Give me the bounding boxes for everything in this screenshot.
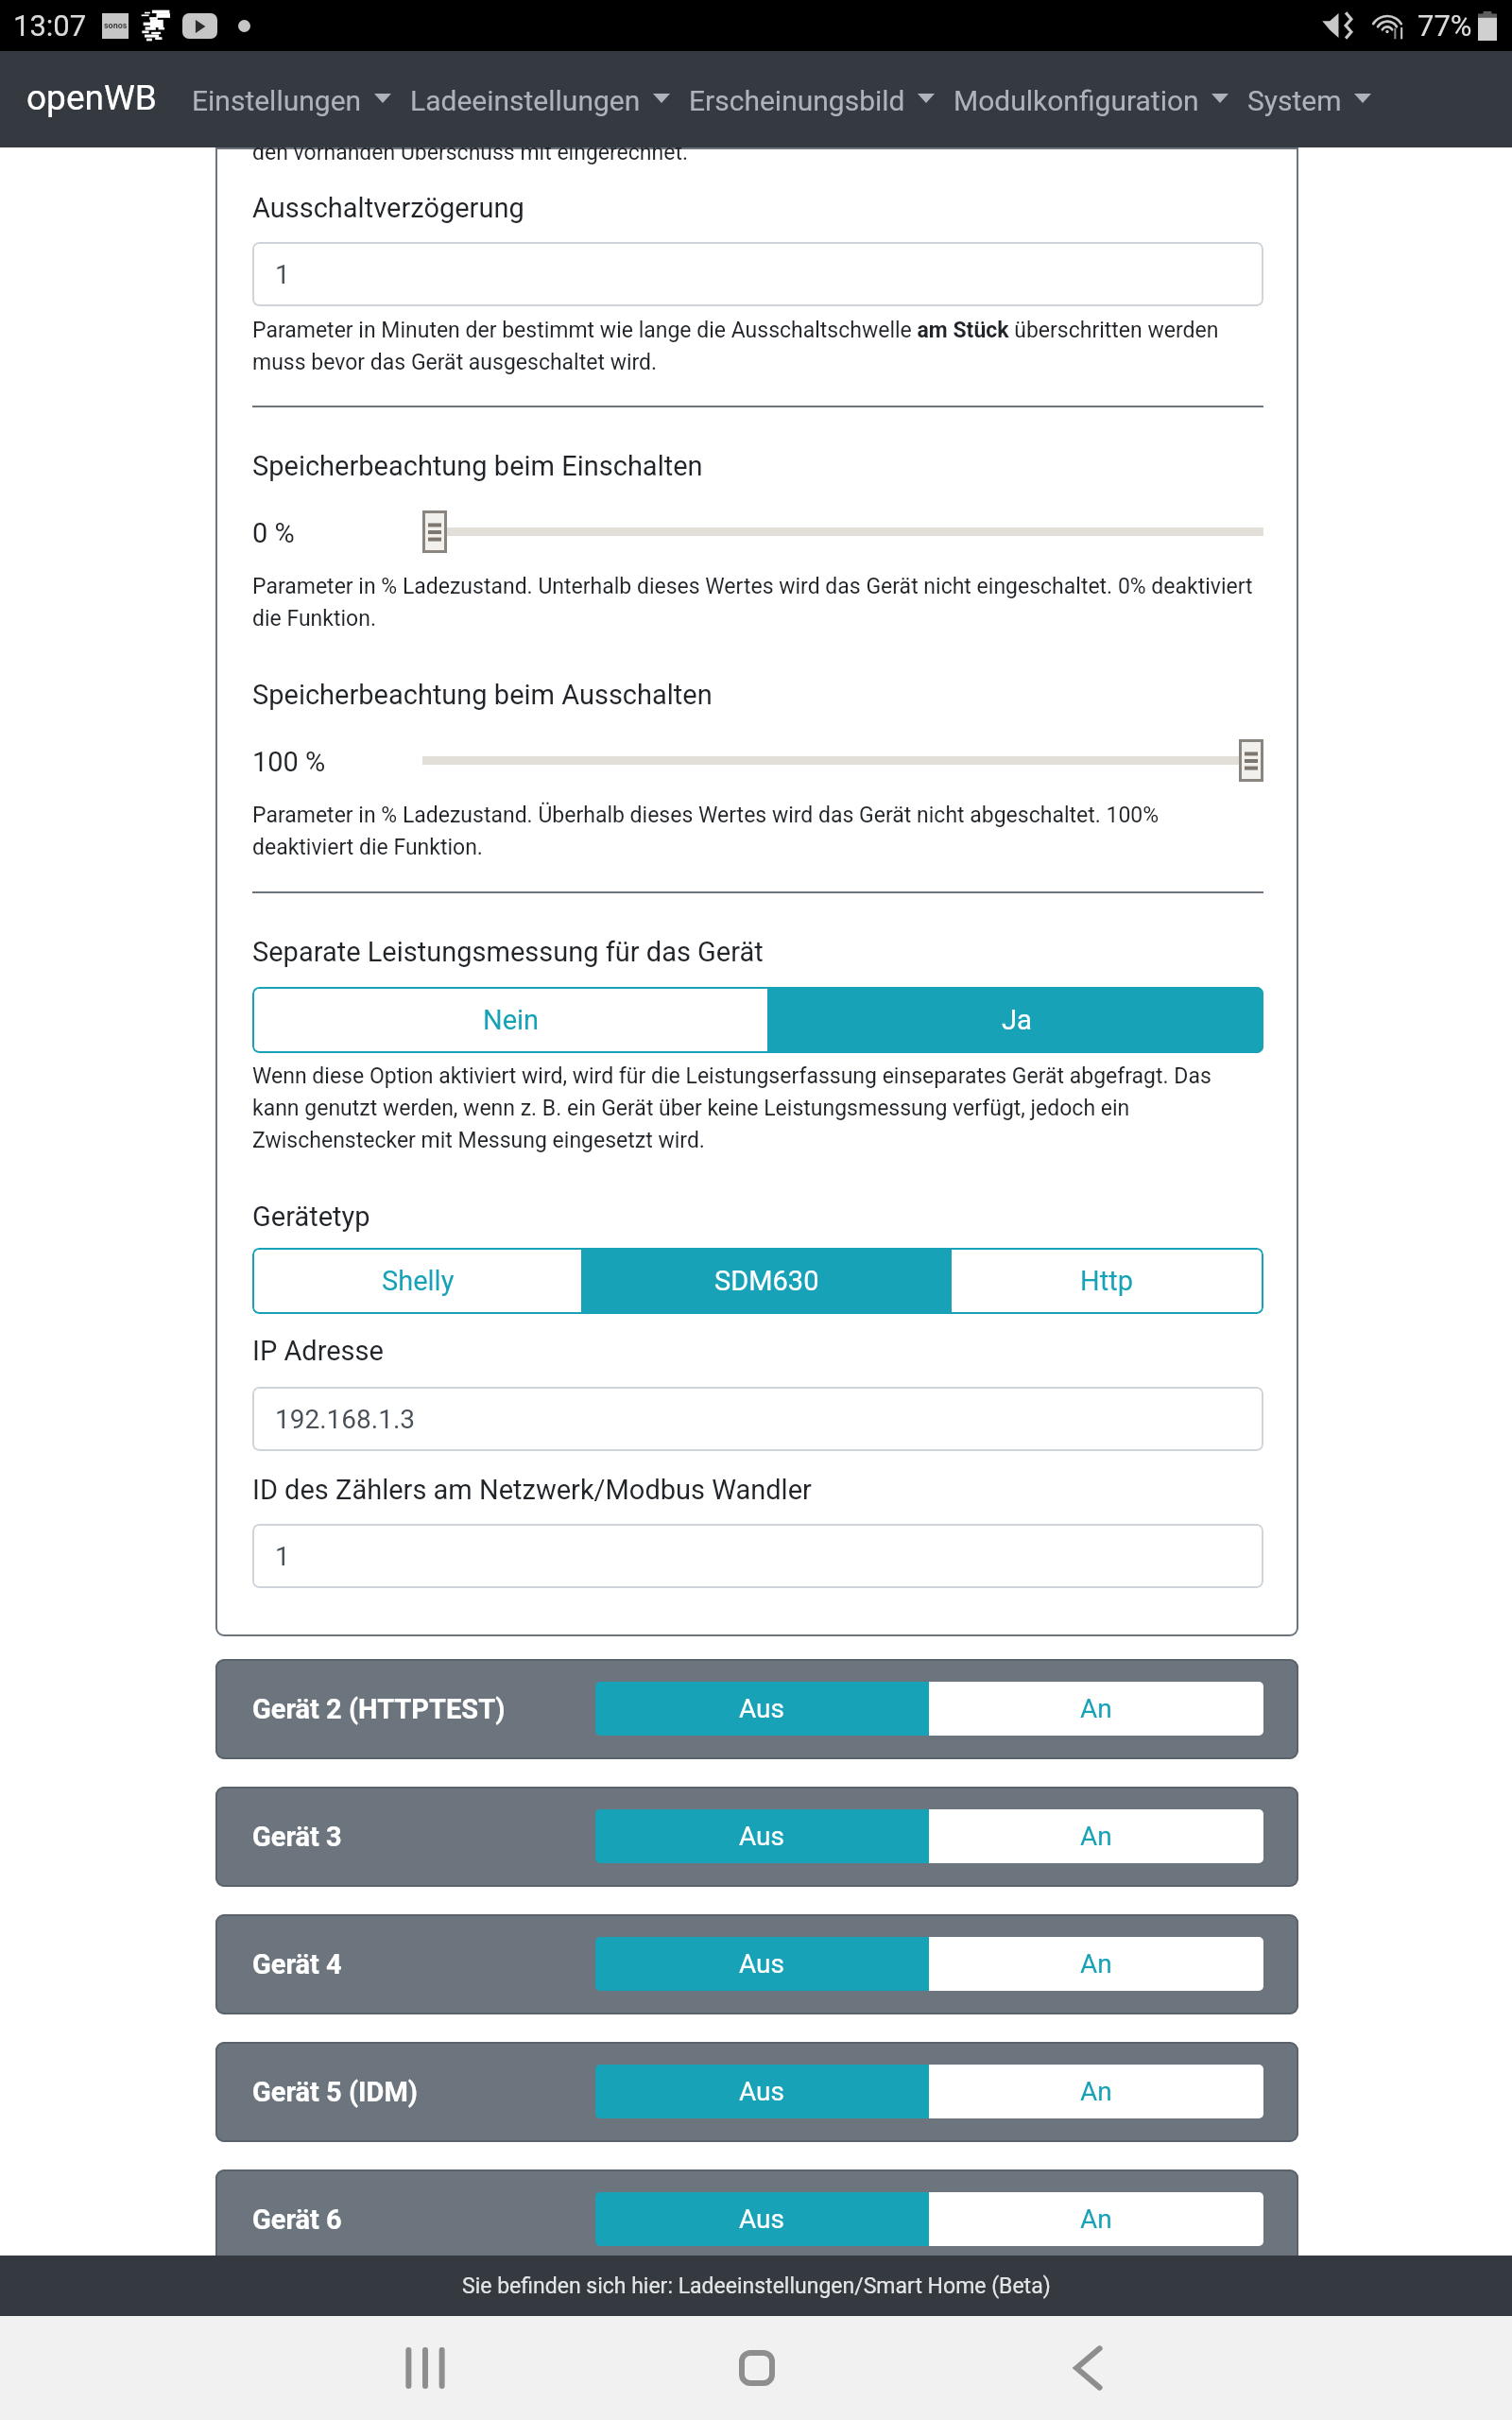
staticText: Aus [739, 1693, 785, 1724]
button[interactable]: Home [714, 2325, 799, 2411]
staticText: 1 [275, 1541, 290, 1572]
staticText: Gerät 5 (IDM) [252, 2076, 419, 2108]
staticText: IP Adresse [252, 1335, 384, 1367]
button[interactable]: Aus [595, 2065, 929, 2118]
staticText: Aus [739, 1948, 785, 1979]
staticText: Ja [1002, 1004, 1032, 1036]
button[interactable]: Aus [595, 1682, 929, 1736]
button[interactable]: Gerät 3 [215, 1787, 1298, 1887]
button[interactable]: Gerät 5 (IDM) [215, 2042, 1298, 2142]
staticText: Nein [483, 1004, 540, 1036]
button[interactable]: An [929, 1682, 1263, 1736]
staticText: An [1080, 1821, 1112, 1852]
staticText: Wenn diese Option aktiviert wird, wird f… [252, 1063, 1263, 1153]
staticText: Separate Leistungsmessung für das Gerät [252, 936, 764, 968]
staticText: Parameter in Minuten der bestimmt wie la… [252, 318, 1263, 375]
staticText: Erscheinungsbild [689, 84, 905, 117]
button[interactable]: Gerät 6 [215, 2169, 1298, 2270]
staticText: An [1080, 1948, 1112, 1979]
staticText: sonos [104, 21, 128, 31]
staticText: System [1247, 84, 1342, 117]
button[interactable]: Slider 0 % [425, 513, 444, 550]
staticText: SDM630 [714, 1265, 819, 1297]
staticText: Ausschaltverzögerung [252, 192, 524, 224]
button[interactable]: Ladeeinstellungen [401, 51, 679, 147]
button[interactable]: Http [950, 1248, 1263, 1314]
button[interactable]: Einstellungen [182, 51, 401, 147]
button[interactable]: An [929, 1937, 1263, 1991]
staticText: Parameter in % Ladezustand. Unterhalb di… [252, 574, 1263, 631]
staticText: Ladeeinstellungen [410, 84, 641, 117]
button[interactable]: System [1238, 51, 1381, 147]
staticText: 0 % [252, 517, 295, 549]
button[interactable]: Shelly [252, 1248, 583, 1314]
staticText: An [1080, 2076, 1112, 2107]
staticText: 77% [1417, 9, 1472, 43]
staticText: An [1080, 2204, 1112, 2235]
button[interactable]: Modulkonfiguration [944, 51, 1238, 147]
button[interactable]: 192.168.1.3 [252, 1387, 1263, 1451]
button[interactable]: 1 [252, 1524, 1263, 1588]
staticText: ID des Zählers am Netzwerk/Modbus Wandle… [252, 1474, 812, 1506]
button[interactable]: Erscheinungsbild [679, 51, 944, 147]
staticText: 13:07 [13, 9, 87, 43]
staticText: 100 % [252, 746, 326, 778]
staticText: Sie befinden sich hier: Ladeeinstellunge… [462, 2273, 1051, 2299]
staticText: Gerät 6 [252, 2204, 342, 2236]
button[interactable]: Nein [252, 987, 769, 1053]
staticText: Speicherbeachtung beim Einschalten [252, 450, 703, 482]
staticText: Aus [739, 2204, 785, 2235]
staticText: Einstellungen [192, 84, 362, 117]
staticText: Aus [739, 2076, 785, 2107]
staticText: An [1080, 1693, 1112, 1724]
staticText: Parameter in % Ladezustand. Überhalb die… [252, 803, 1263, 860]
button[interactable]: An [929, 2192, 1263, 2246]
staticText: Http [1080, 1265, 1133, 1297]
button[interactable]: Aus [595, 1937, 929, 1991]
staticText: den vorhanden Überschuss mit eingerechne… [252, 140, 688, 165]
button[interactable]: openWB [0, 51, 164, 147]
button[interactable]: Aus [595, 1809, 929, 1863]
button[interactable]: Gerät 4 [215, 1914, 1298, 2014]
staticText: Gerätetyp [252, 1201, 370, 1233]
button[interactable]: Recent apps [383, 2325, 468, 2411]
staticText: Shelly [382, 1265, 455, 1297]
button[interactable]: 1 [252, 242, 1263, 306]
staticText: Aus [739, 1821, 785, 1852]
staticText: Gerät 4 [252, 1948, 342, 1980]
button[interactable]: Gerät 2 (HTTPTEST) [215, 1659, 1298, 1759]
staticText: Speicherbeachtung beim Ausschalten [252, 679, 713, 711]
staticText: openWB [26, 78, 157, 118]
staticText: 1 [275, 259, 290, 290]
button[interactable]: Ja [769, 987, 1263, 1053]
button[interactable]: Aus [595, 2192, 929, 2246]
button[interactable]: Back [1045, 2325, 1130, 2411]
button[interactable]: An [929, 2065, 1263, 2118]
staticText: Modulkonfiguration [954, 84, 1199, 117]
staticText: 192.168.1.3 [275, 1404, 416, 1435]
staticText: Gerät 3 [252, 1821, 342, 1853]
button[interactable]: SDM630 [583, 1248, 950, 1314]
button[interactable]: Slider 100 % [1242, 742, 1261, 779]
staticText: Gerät 2 (HTTPTEST) [252, 1693, 506, 1725]
button[interactable]: An [929, 1809, 1263, 1863]
